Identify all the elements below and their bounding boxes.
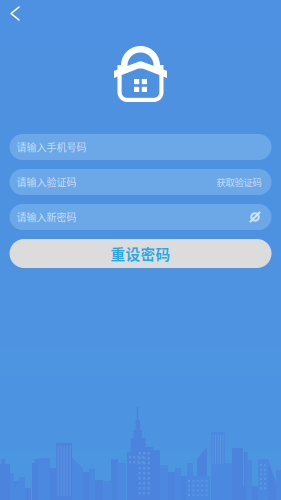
staticText: 请输入新密码 [16,210,76,224]
staticText: 请输入手机号码 [16,140,86,154]
button[interactable]: Back [0,0,31,27]
button[interactable]: Show password [248,210,261,223]
button[interactable]: 获取验证码 [216,175,261,189]
button[interactable]: 重设密码 [9,239,271,268]
staticText: 获取验证码 [216,175,261,189]
staticText: 重设密码 [110,243,170,264]
staticText: 请输入验证码 [16,175,76,189]
